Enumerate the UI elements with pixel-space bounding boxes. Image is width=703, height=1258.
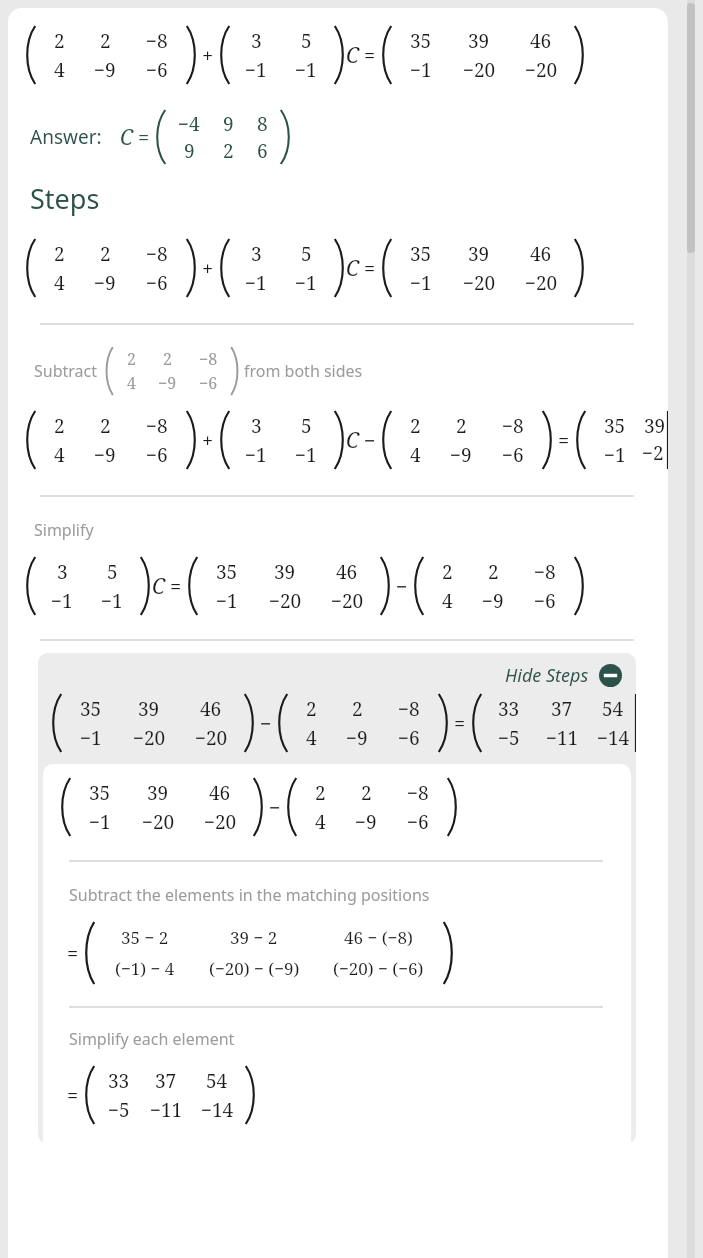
staticText: =: [364, 42, 376, 69]
staticText: 37: [551, 696, 573, 722]
staticText: 4: [127, 372, 136, 394]
staticText: 39: [138, 696, 160, 722]
staticText: −: [260, 710, 272, 737]
staticText: 5: [301, 28, 312, 54]
staticText: −9: [94, 270, 116, 296]
button[interactable]: Hide Steps: [499, 657, 628, 694]
staticText: −8: [146, 28, 168, 54]
staticText: 2: [100, 28, 111, 54]
staticText: −6: [407, 809, 429, 835]
staticText: 46: [209, 780, 231, 806]
staticText: 35: [604, 413, 626, 439]
staticText: =: [67, 1082, 79, 1109]
staticText: 2: [54, 241, 65, 267]
staticText: 5: [301, 241, 312, 267]
staticText: C: [152, 572, 166, 601]
staticText: −20: [463, 270, 496, 296]
staticText: 9: [184, 138, 195, 164]
staticText: −1: [295, 442, 317, 468]
staticText: 39: [468, 241, 490, 267]
staticText: +: [202, 42, 214, 69]
staticText: 4: [410, 442, 421, 468]
staticText: 8: [257, 111, 268, 137]
staticText: −8: [534, 559, 556, 585]
staticText: −5: [498, 725, 520, 751]
staticText: Hide Steps: [505, 663, 589, 688]
staticText: −8: [199, 348, 218, 370]
staticText: −1: [245, 57, 267, 83]
staticText: 37: [155, 1068, 177, 1094]
staticText: +: [202, 427, 214, 454]
staticText: −: [396, 573, 408, 600]
staticText: −1: [295, 57, 317, 83]
staticText: 2: [54, 413, 65, 439]
staticText: −8: [407, 780, 429, 806]
staticText: −8: [146, 241, 168, 267]
staticText: =: [454, 710, 466, 737]
staticText: −9: [346, 725, 368, 751]
staticText: 5: [107, 559, 118, 585]
staticText: −9: [482, 588, 504, 614]
staticText: −1: [410, 57, 432, 83]
staticText: 39: [644, 413, 666, 439]
staticText: 35: [410, 241, 432, 267]
staticText: −9: [94, 442, 116, 468]
staticText: Subtract: [34, 360, 98, 382]
staticText: 39 − 2: [230, 926, 278, 949]
staticText: 4: [442, 588, 453, 614]
staticText: =: [138, 124, 150, 151]
staticText: +: [202, 255, 214, 282]
staticText: −9: [450, 442, 472, 468]
staticText: 35: [216, 559, 238, 585]
staticText: −6: [398, 725, 420, 751]
staticText: C: [346, 254, 360, 283]
staticText: −4: [178, 111, 200, 137]
staticText: −6: [146, 57, 168, 83]
staticText: 5: [301, 413, 312, 439]
staticText: −6: [146, 442, 168, 468]
staticText: −5: [108, 1097, 130, 1123]
staticText: 4: [306, 725, 317, 751]
staticText: −6: [502, 442, 524, 468]
staticText: −20: [133, 725, 166, 751]
staticText: −1: [245, 442, 267, 468]
staticText: 4: [315, 809, 326, 835]
staticText: −1: [410, 270, 432, 296]
staticText: 2: [163, 348, 172, 370]
staticText: 9: [223, 111, 234, 137]
staticText: 35: [410, 28, 432, 54]
staticText: −1: [604, 442, 626, 468]
staticText: 33: [498, 696, 520, 722]
staticText: 46: [530, 28, 552, 54]
staticText: 2: [361, 780, 372, 806]
staticText: −: [269, 794, 281, 821]
staticText: −20: [269, 588, 302, 614]
staticText: Answer:: [30, 124, 102, 150]
staticText: 39: [147, 780, 169, 806]
staticText: −9: [355, 809, 377, 835]
staticText: −6: [146, 270, 168, 296]
staticText: −8: [398, 696, 420, 722]
staticText: −6: [199, 372, 218, 394]
staticText: −20: [204, 809, 237, 835]
staticText: −9: [94, 57, 116, 83]
staticText: 2: [100, 413, 111, 439]
staticText: 2: [315, 780, 326, 806]
staticText: 35: [89, 780, 111, 806]
staticText: −20: [525, 57, 558, 83]
staticText: =: [558, 427, 570, 454]
staticText: −8: [502, 413, 524, 439]
staticText: 46: [200, 696, 222, 722]
staticText: −20: [142, 809, 175, 835]
staticText: −1: [295, 270, 317, 296]
staticText: −8: [146, 413, 168, 439]
staticText: 54: [206, 1068, 228, 1094]
staticText: C: [120, 123, 134, 152]
staticText: 39: [468, 28, 490, 54]
staticText: 35: [80, 696, 102, 722]
staticText: 54: [602, 696, 624, 722]
staticText: −1: [89, 809, 111, 835]
staticText: Simplify: [34, 519, 94, 541]
staticText: −: [364, 427, 376, 454]
staticText: −11: [150, 1097, 183, 1123]
